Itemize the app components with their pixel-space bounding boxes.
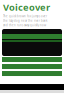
staticText: and then runs away quickly now bbox=[3, 23, 46, 27]
staticText: The quick brown fox jumps over bbox=[3, 14, 47, 18]
staticText: the lazy dog near the river bank bbox=[3, 19, 47, 22]
staticText: Voiceover bbox=[3, 1, 50, 13]
